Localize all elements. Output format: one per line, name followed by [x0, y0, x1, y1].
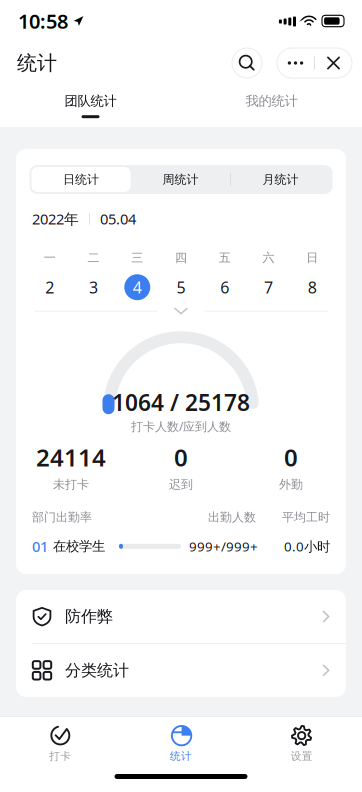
button[interactable]: 3 — [72, 273, 115, 301]
staticText: 打卡人数/应到人数 — [131, 418, 231, 434]
button[interactable]: 更多 — [277, 48, 314, 78]
staticText: 8 — [308, 277, 317, 298]
button[interactable]: 周统计 — [130, 167, 230, 192]
button[interactable]: 打卡 — [0, 724, 121, 764]
staticText: 四 — [175, 250, 187, 265]
staticText: 1064 / 25178 — [112, 387, 250, 417]
staticText: 周统计 — [162, 172, 198, 187]
staticText: 打卡 — [49, 750, 71, 763]
staticText: 0.0小时 — [284, 537, 330, 555]
button[interactable]: 8 — [290, 273, 334, 301]
button[interactable]: 展开日历 — [16, 301, 346, 321]
staticText: 10:58 — [18, 8, 68, 34]
button[interactable]: 6 — [203, 273, 247, 301]
staticText: 01 — [32, 537, 48, 556]
staticText: 0 — [174, 441, 188, 473]
staticText: 团队统计 — [64, 93, 116, 109]
staticText: 6 — [220, 277, 229, 298]
button[interactable]: 月统计 — [230, 167, 330, 192]
button[interactable]: 5 — [159, 273, 203, 301]
button[interactable]: 设置 — [241, 724, 362, 764]
staticText: 未打卡 — [53, 477, 89, 492]
staticText: 月统计 — [262, 172, 298, 187]
button[interactable]: 分类统计 — [16, 644, 346, 697]
staticText: 五 — [219, 250, 231, 265]
staticText: 7 — [264, 277, 273, 298]
button[interactable]: 我的统计 — [181, 84, 362, 127]
staticText: 4 — [133, 277, 142, 298]
staticText: 日 — [306, 250, 318, 265]
staticText: 日统计 — [63, 172, 99, 187]
staticText: 5 — [176, 277, 185, 298]
button[interactable]: 团队统计 — [0, 84, 181, 127]
staticText: 一 — [44, 250, 56, 265]
staticText: 六 — [262, 250, 274, 265]
button[interactable]: 4 — [115, 273, 159, 301]
staticText: 在校学生 — [53, 538, 105, 554]
staticText: 999+/999+ — [189, 537, 258, 555]
staticText: 我的统计 — [245, 93, 297, 109]
staticText: 出勤人数 — [208, 510, 256, 524]
staticText: 设置 — [291, 750, 313, 763]
staticText: 防作弊 — [65, 607, 113, 626]
staticText: 0 — [284, 441, 298, 473]
staticText: 分类统计 — [65, 660, 129, 680]
staticText: 24114 — [36, 441, 106, 473]
button[interactable]: 搜索 — [232, 48, 262, 78]
button[interactable]: 7 — [247, 273, 290, 301]
staticText: 2 — [45, 277, 54, 298]
staticText: 2022年 — [32, 209, 79, 228]
button[interactable]: 日统计 — [31, 167, 130, 192]
button[interactable]: 防作弊 — [16, 590, 346, 643]
staticText: 迟到 — [169, 477, 193, 492]
staticText: 外勤 — [279, 477, 303, 492]
button[interactable]: 统计 — [121, 724, 241, 764]
staticText: 统计 — [170, 750, 192, 763]
button[interactable]: 2 — [28, 273, 72, 301]
staticText: 05.04 — [100, 209, 136, 228]
staticText: 3 — [89, 277, 98, 298]
staticText: 统计 — [17, 51, 57, 75]
staticText: 二 — [88, 250, 100, 265]
staticText: 平均工时 — [282, 510, 330, 524]
staticText: 三 — [131, 250, 143, 265]
staticText: 部门出勤率 — [32, 510, 92, 524]
button[interactable]: 关闭 — [315, 48, 352, 78]
